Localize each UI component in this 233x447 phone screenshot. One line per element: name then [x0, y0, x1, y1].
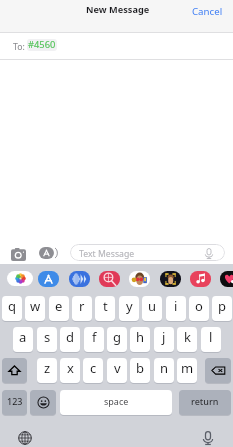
- button[interactable]: m: [177, 358, 197, 384]
- button[interactable]: iMessage apps: [37, 242, 58, 263]
- button[interactable]: Dictate: [198, 428, 218, 447]
- button[interactable]: p: [212, 296, 232, 322]
- button[interactable]: g: [107, 327, 127, 353]
- staticText: q: [8, 297, 16, 315]
- button[interactable]: q: [2, 296, 22, 322]
- staticText: v: [114, 359, 121, 377]
- button[interactable]: space: [60, 390, 172, 416]
- button[interactable]: Photos: [7, 271, 33, 286]
- button[interactable]: l: [201, 327, 221, 353]
- button[interactable]: c: [83, 358, 103, 384]
- staticText: y: [126, 297, 133, 315]
- button[interactable]: App 2: [69, 271, 90, 287]
- button[interactable]: z: [37, 358, 57, 384]
- staticText: f: [92, 328, 97, 346]
- staticText: New Message: [86, 3, 150, 16]
- staticText: t: [103, 297, 108, 315]
- staticText: w: [30, 297, 41, 315]
- button[interactable]: App 7: [220, 271, 233, 287]
- button[interactable]: Cancel: [185, 2, 230, 30]
- staticText: b: [136, 359, 144, 377]
- button[interactable]: t: [95, 296, 115, 322]
- button[interactable]: 123: [2, 390, 27, 416]
- staticText: c: [90, 359, 97, 377]
- button[interactable]: i: [166, 296, 186, 322]
- staticText: r: [79, 297, 85, 315]
- button[interactable]: d: [60, 327, 80, 353]
- staticText: h: [136, 328, 145, 346]
- staticText: u: [148, 297, 157, 315]
- staticText: x: [67, 359, 74, 377]
- button[interactable]: App 1: [38, 271, 59, 287]
- button[interactable]: h: [130, 327, 150, 353]
- button[interactable]: [205, 358, 231, 384]
- staticText: space: [104, 395, 129, 407]
- staticText: i: [174, 297, 178, 315]
- button[interactable]: Text Message: [70, 244, 225, 261]
- button[interactable]: e: [49, 296, 69, 322]
- button[interactable]: v: [107, 358, 127, 384]
- button[interactable]: x: [60, 358, 80, 384]
- button[interactable]: a: [13, 327, 33, 353]
- staticText: Text Message: [79, 248, 135, 260]
- staticText: o: [195, 297, 203, 315]
- staticText: To:: [13, 41, 25, 53]
- staticText: 123: [7, 395, 23, 407]
- button[interactable]: r: [72, 296, 92, 322]
- button[interactable]: w: [25, 296, 45, 322]
- button[interactable]: App 3: [99, 271, 120, 287]
- staticText: z: [44, 359, 51, 377]
- button[interactable]: App 5: [160, 271, 181, 287]
- button[interactable]: u: [142, 296, 162, 322]
- button[interactable]: f: [84, 327, 104, 353]
- other: Dictate: [203, 247, 215, 259]
- button[interactable]: j: [154, 327, 174, 353]
- button[interactable]: Next keyboard: [15, 428, 35, 447]
- button[interactable]: s: [37, 327, 57, 353]
- staticText: s: [44, 328, 51, 346]
- staticText: m: [181, 359, 194, 377]
- staticText: j: [162, 328, 166, 346]
- button[interactable]: App 4: [129, 271, 150, 287]
- staticText: n: [160, 359, 169, 377]
- button[interactable]: b: [130, 358, 150, 384]
- staticText: l: [209, 328, 213, 346]
- staticText: k: [184, 328, 191, 346]
- staticText: d: [66, 328, 74, 346]
- staticText: a: [19, 328, 27, 346]
- staticText: return: [191, 395, 219, 407]
- staticText: #4560: [28, 39, 56, 50]
- button[interactable]: [2, 358, 27, 384]
- button[interactable]: App 6: [190, 271, 211, 287]
- button[interactable]: y: [119, 296, 139, 322]
- button[interactable]: k: [177, 327, 197, 353]
- staticText: Cancel: [192, 5, 223, 18]
- staticText: p: [218, 297, 226, 315]
- button[interactable]: n: [154, 358, 174, 384]
- button[interactable]: return: [179, 390, 231, 416]
- button[interactable]: o: [189, 296, 209, 322]
- staticText: e: [55, 297, 63, 315]
- button[interactable]: [30, 390, 56, 416]
- staticText: g: [113, 328, 121, 346]
- button[interactable]: Take photo: [8, 244, 29, 265]
